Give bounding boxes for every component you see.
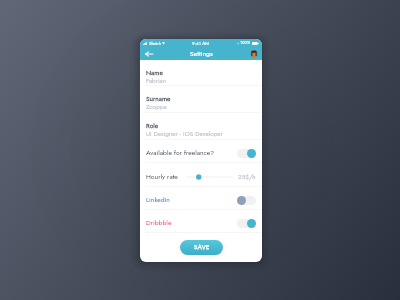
button[interactable]: Back	[144, 49, 154, 59]
staticText: 25$/h	[238, 172, 256, 181]
staticText: Dribbble	[146, 218, 172, 228]
button[interactable]: Available for freelance?	[140, 140, 262, 162]
staticText: Fabrian	[146, 76, 167, 85]
button[interactable]: Hourly rate slider	[187, 173, 233, 181]
staticText: Settings	[190, 49, 213, 59]
staticText: 100%	[240, 40, 251, 46]
staticText: Surname	[146, 94, 171, 104]
staticText: SAVE	[194, 243, 210, 252]
staticText: Zooppa	[146, 102, 167, 111]
staticText: Available for freelance?	[146, 148, 215, 158]
button[interactable]: Dribbble	[140, 210, 262, 232]
button[interactable]: SAVE	[180, 240, 223, 255]
button[interactable]: Profile	[249, 49, 258, 58]
staticText: Name	[146, 68, 163, 78]
staticText: LinkedIn	[146, 195, 170, 205]
staticText: UI Designer - iOS Developer	[146, 129, 223, 138]
button[interactable]: LinkedIn	[140, 187, 262, 209]
staticText: Hourly rate	[146, 172, 178, 182]
staticText: Role	[146, 121, 159, 131]
staticText: Sketch	[149, 40, 161, 46]
staticText: 9:41 AM	[192, 40, 209, 47]
